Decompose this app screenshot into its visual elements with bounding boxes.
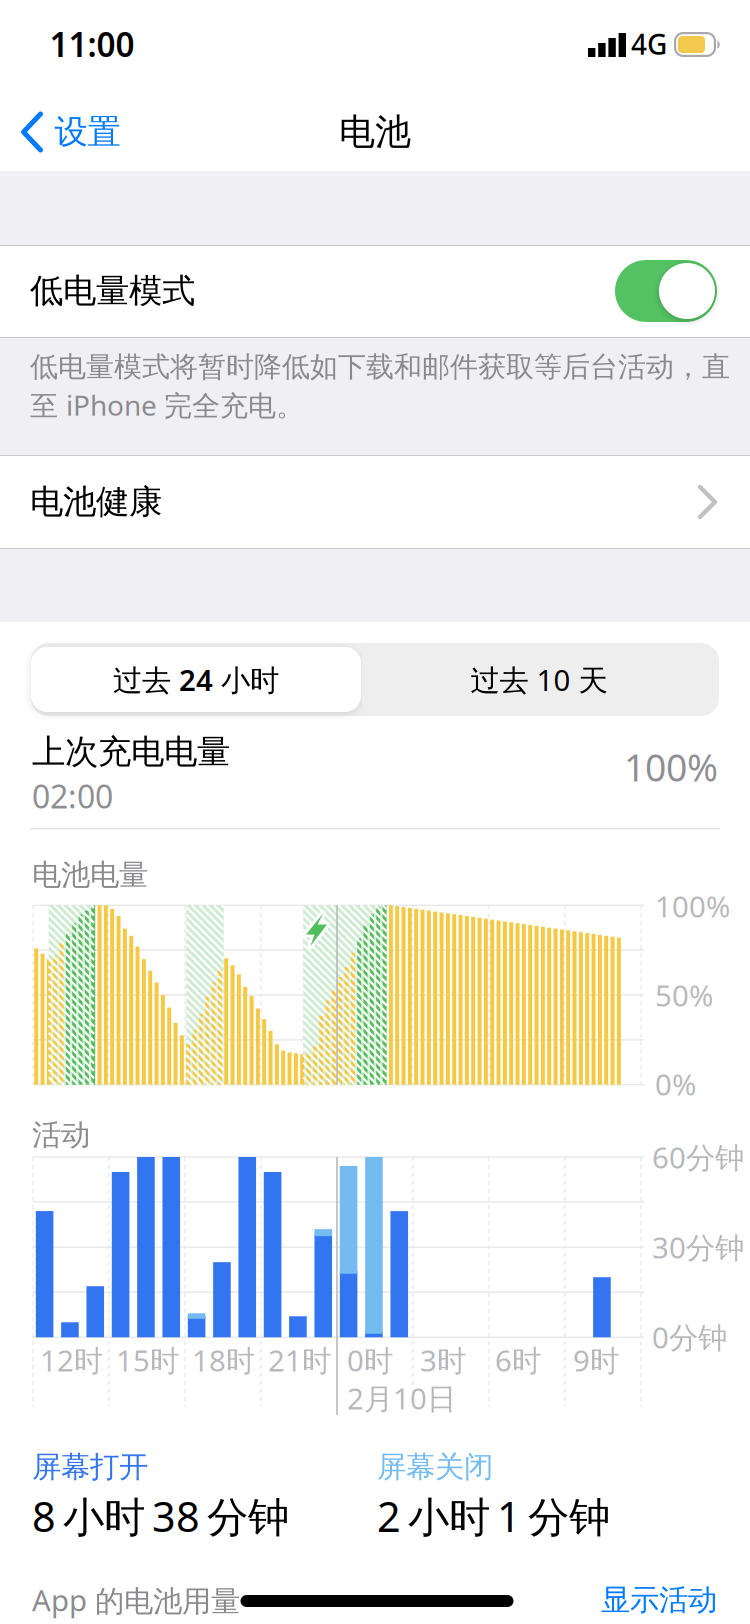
staticText: App 的电池用量	[32, 1580, 240, 1619]
staticText: 显示活动	[601, 1582, 717, 1618]
staticText: 电池	[339, 110, 411, 154]
staticText: 02:00	[32, 775, 113, 817]
button[interactable]: 显示活动	[601, 1582, 717, 1618]
staticText: 15时	[116, 1340, 179, 1379]
staticText: 至 iPhone 完全充电。	[30, 386, 304, 424]
staticText: 0%	[655, 1064, 696, 1103]
staticText: 11:00	[49, 22, 134, 66]
staticText: 100%	[624, 742, 718, 792]
button[interactable]	[615, 260, 717, 322]
staticText: 0分钟	[652, 1317, 727, 1356]
staticText: 21时	[268, 1340, 331, 1379]
staticText: 电池健康	[30, 481, 162, 522]
staticText: 100%	[655, 886, 730, 925]
staticText: 4G	[631, 25, 667, 63]
button[interactable]: 设置	[19, 111, 120, 153]
staticText: 60分钟	[652, 1137, 744, 1176]
staticText: 设置	[54, 111, 120, 152]
staticText: 低电量模式	[30, 270, 195, 311]
staticText: 活动	[32, 1117, 90, 1153]
staticText: 8 小时 38 分钟	[32, 1489, 289, 1543]
staticText: 50%	[655, 975, 713, 1014]
staticText: 2 小时 1 分钟	[377, 1489, 610, 1543]
staticText: 9时	[573, 1340, 619, 1379]
staticText: 上次充电电量	[32, 731, 230, 772]
staticText: 6时	[495, 1340, 541, 1379]
staticText: 屏幕关闭	[377, 1449, 493, 1485]
staticText: 12时	[40, 1340, 103, 1379]
staticText: 3时	[420, 1340, 466, 1379]
staticText: 屏幕打开	[32, 1449, 148, 1485]
staticText: 0时	[347, 1340, 393, 1379]
staticText: 过去 24 小时	[113, 660, 279, 699]
staticText: 18时	[192, 1340, 255, 1379]
staticText: 低电量模式将暂时降低如下载和邮件获取等后台活动，直	[30, 350, 730, 384]
staticText: 过去 10 天	[470, 660, 607, 699]
button[interactable]: 电池健康	[0, 456, 750, 548]
staticText: 电池电量	[32, 857, 148, 893]
staticText: 30分钟	[652, 1227, 744, 1266]
staticText: 2月10日	[347, 1378, 456, 1417]
button[interactable]: 过去 10 天	[361, 643, 716, 716]
button[interactable]	[31, 647, 361, 712]
